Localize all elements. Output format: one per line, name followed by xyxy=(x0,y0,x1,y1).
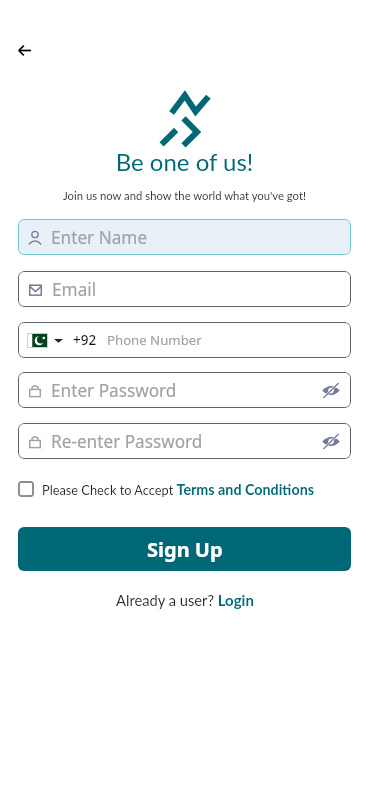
button[interactable]: Already a user? Login xyxy=(116,591,254,609)
staticText: +92 xyxy=(73,331,97,349)
staticText: Phone Number xyxy=(107,331,202,349)
staticText: Please Check to Accept Terms and Conditi… xyxy=(42,481,315,498)
staticText: Already a user? Login xyxy=(116,591,254,609)
button[interactable]: Email xyxy=(18,271,351,307)
button[interactable]: Enter Password xyxy=(18,372,351,408)
staticText: Be one of us! xyxy=(0,147,369,176)
staticText: Enter Name xyxy=(51,226,148,249)
staticText: Join us now and show the world what you'… xyxy=(0,189,369,203)
button[interactable]: Enter Name xyxy=(18,219,351,255)
staticText: Sign Up xyxy=(147,536,223,563)
staticText: Enter Password xyxy=(51,379,177,402)
button[interactable]: +92 xyxy=(18,322,351,358)
staticText: Re-enter Password xyxy=(51,430,203,453)
button[interactable]: Toggle password visibility xyxy=(321,434,341,449)
staticText: Email xyxy=(52,278,97,301)
button[interactable]: Please Check to Accept Terms and Conditi… xyxy=(18,479,315,499)
button[interactable]: Back xyxy=(8,34,41,67)
button[interactable]: Sign Up xyxy=(18,527,351,571)
button[interactable]: Toggle password visibility xyxy=(321,383,341,398)
button[interactable]: Re-enter Password xyxy=(18,423,351,459)
